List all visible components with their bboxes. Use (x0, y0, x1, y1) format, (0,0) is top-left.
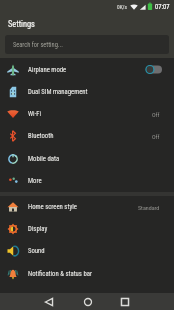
staticText: Bluetooth (28, 132, 54, 140)
staticText: Off (152, 111, 160, 118)
button[interactable]: Display (0, 218, 174, 240)
staticText: Notification & status bar (28, 270, 92, 278)
button[interactable]: Bluetooth (0, 125, 174, 147)
button[interactable]: Mobile data (0, 147, 174, 170)
button[interactable]: Home (77, 293, 98, 310)
staticText: Search for setting... (13, 41, 63, 49)
staticText: Airplane mode (28, 66, 67, 74)
staticText: Mobile data (28, 155, 60, 163)
staticText: Settings (8, 19, 35, 29)
button[interactable]: Search for setting... (5, 35, 169, 54)
button[interactable]: Recent apps (114, 293, 135, 310)
staticText: 07:07 (155, 3, 170, 11)
button[interactable]: Dual SIM management (0, 81, 174, 103)
staticText: 0K/s (117, 4, 128, 10)
staticText: Sound (28, 247, 45, 255)
button[interactable]: Airplane mode toggle (144, 63, 162, 77)
staticText: Dual SIM management (28, 88, 88, 96)
button[interactable]: Notification & status bar (0, 262, 174, 285)
button[interactable]: Back (38, 293, 59, 310)
staticText: Off (152, 133, 160, 140)
staticText: Standard (138, 204, 160, 211)
staticText: Display (28, 225, 48, 233)
staticText: Wi-Fi (28, 110, 42, 118)
button[interactable]: Sound (0, 240, 174, 262)
button[interactable]: Home screen style (0, 196, 174, 218)
button[interactable]: More (0, 170, 174, 192)
staticText: Home screen style (28, 203, 77, 211)
button[interactable]: Airplane mode (0, 58, 174, 81)
button[interactable]: Wi-Fi (0, 103, 174, 125)
staticText: More (28, 177, 42, 185)
